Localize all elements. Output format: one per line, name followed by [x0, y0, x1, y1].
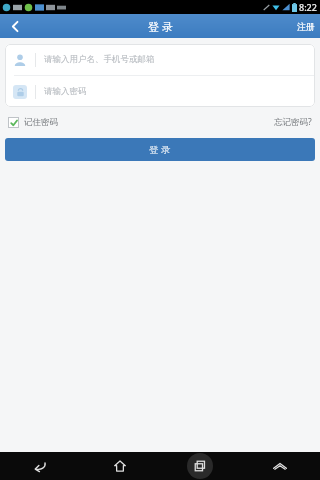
staticText: 登 录	[149, 143, 171, 156]
staticText: 请输入用户名、手机号或邮箱	[44, 54, 155, 65]
button[interactable]: Home	[80, 452, 160, 480]
staticText: 注册	[297, 21, 315, 32]
button[interactable]: 注册	[297, 14, 315, 38]
button[interactable]: 请输入密码	[5, 76, 315, 107]
button[interactable]: Up	[240, 452, 320, 480]
staticText: 登 录	[148, 19, 173, 34]
staticText: 8:22	[299, 1, 317, 13]
button[interactable]: 记住密码	[8, 117, 58, 128]
button[interactable]: Recents	[160, 452, 240, 480]
button[interactable]: Back	[0, 452, 80, 480]
button[interactable]: 请输入用户名、手机号或邮箱	[5, 44, 315, 75]
button[interactable]: 忘记密码?	[274, 116, 312, 128]
staticText: 请输入密码	[44, 86, 87, 97]
staticText: 记住密码	[24, 117, 58, 128]
staticText: 忘记密码?	[274, 116, 312, 128]
button[interactable]: 登 录	[5, 138, 315, 161]
button[interactable]: Back	[0, 14, 30, 38]
